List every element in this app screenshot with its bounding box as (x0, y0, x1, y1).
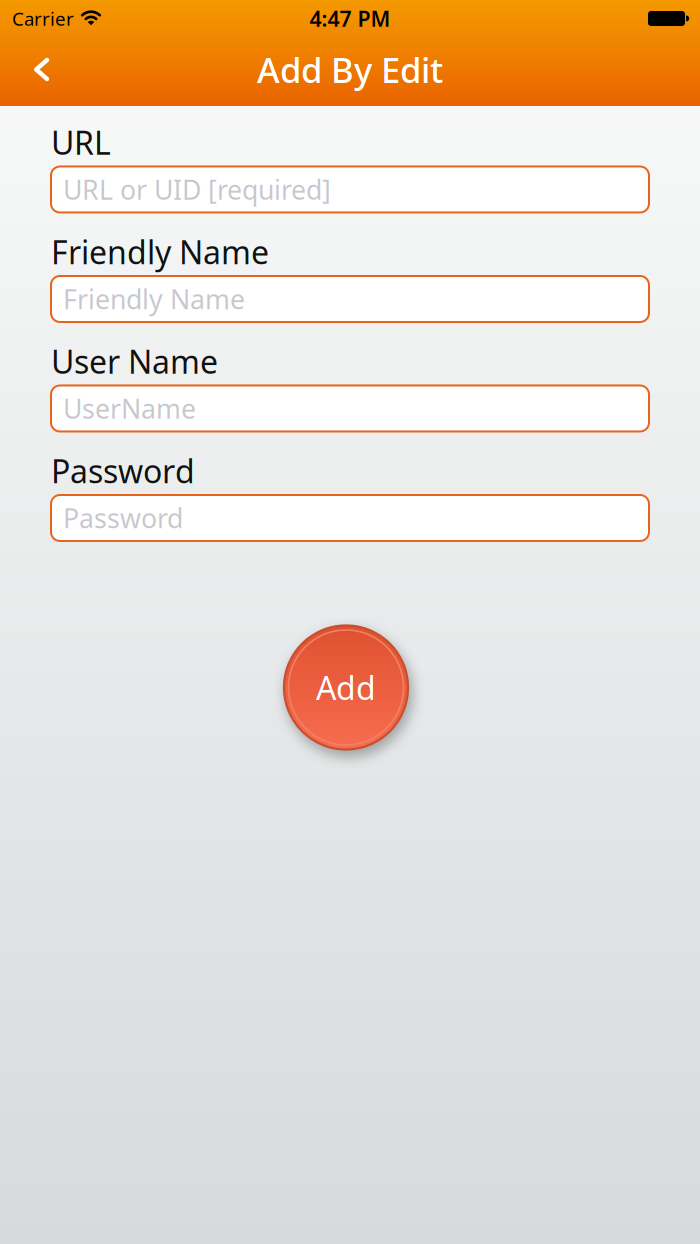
staticText: Password (51, 449, 195, 492)
staticText: Friendly Name (63, 281, 245, 317)
staticText: 4:47 PM (309, 4, 390, 33)
staticText: Friendly Name (51, 230, 269, 273)
staticText: Add (316, 666, 376, 709)
staticText: User Name (51, 340, 218, 382)
staticText: Password (63, 500, 183, 536)
button[interactable]: Password (51, 495, 649, 541)
button[interactable]: Friendly Name (51, 276, 649, 322)
button[interactable]: URL or UID [required] (51, 166, 649, 212)
staticText: UserName (63, 391, 196, 426)
staticText: URL (51, 121, 111, 163)
staticText: URL or UID [required] (63, 172, 331, 207)
button[interactable]: UserName (51, 385, 649, 431)
staticText: Add By Edit (257, 46, 443, 92)
button[interactable]: Back (0, 40, 69, 103)
button[interactable]: Add (283, 625, 408, 750)
staticText: Carrier (12, 6, 74, 31)
